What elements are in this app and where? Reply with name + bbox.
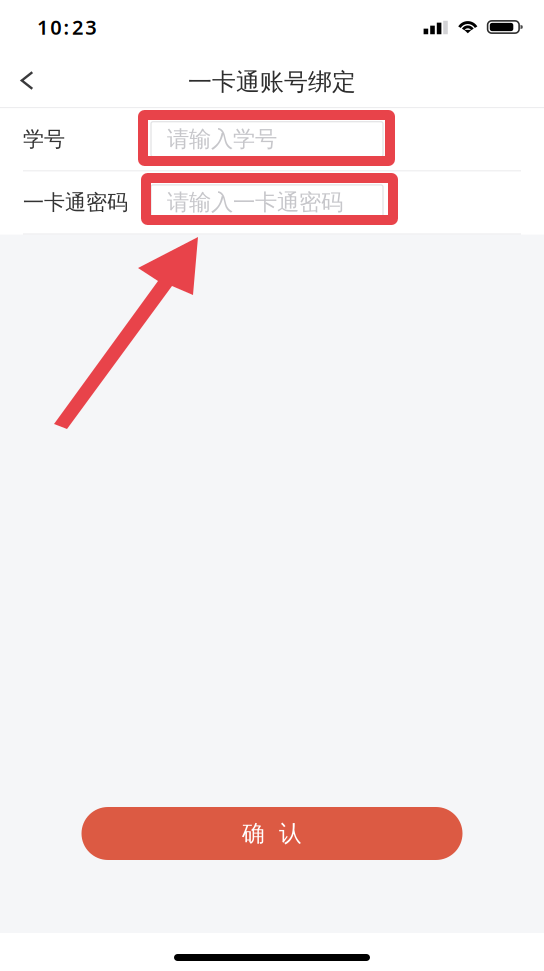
staticText: 一卡通密码	[23, 189, 128, 216]
staticText: 确 认	[242, 820, 302, 847]
staticText: 请输入一卡通密码	[167, 188, 343, 216]
button[interactable]: 请输入一卡通密码	[151, 185, 383, 220]
staticText: 10:23	[37, 14, 96, 40]
staticText: 学号	[23, 126, 65, 152]
button[interactable]: 请输入学号	[151, 122, 383, 157]
button[interactable]: 确 认	[81, 807, 462, 860]
staticText: 请输入学号	[167, 125, 277, 153]
staticText: 一卡通账号绑定	[188, 67, 356, 97]
button[interactable]: Back	[4, 57, 50, 103]
